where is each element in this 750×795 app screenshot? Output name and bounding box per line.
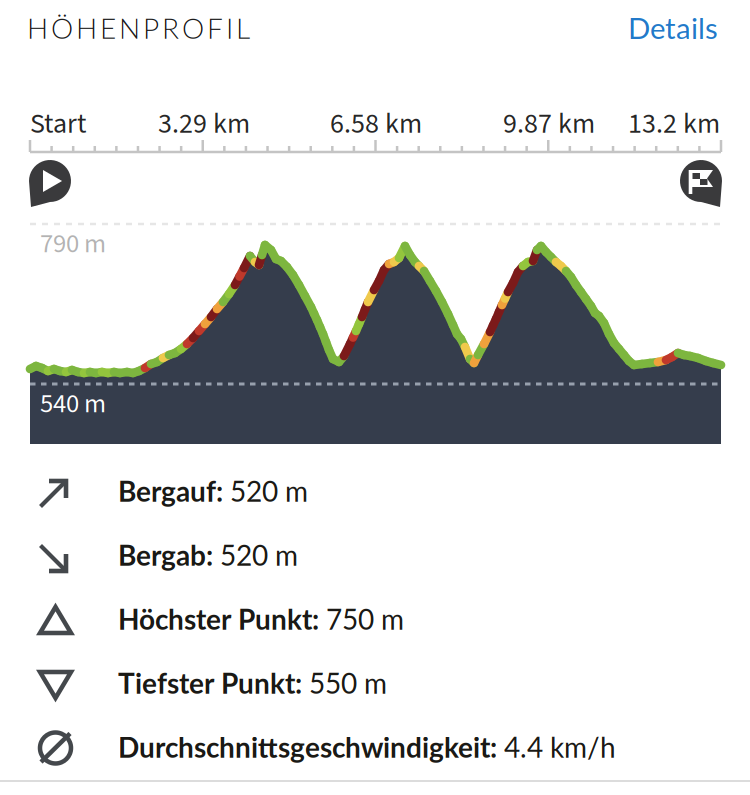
button[interactable]: Durchschnittsgeschwindigkeit: 4.4 km/h [0,715,750,779]
staticText: Tiefster Punkt: 550 m [118,667,387,699]
staticText: 6.58 km [330,104,422,144]
button[interactable]: Bergab: 520 m [0,523,750,587]
button[interactable]: Höchster Punkt: 750 m [0,587,750,651]
staticText: 3.29 km [158,104,250,144]
button[interactable]: Tiefster Punkt: 550 m [0,651,750,715]
button[interactable]: HÖHENPROFIL [27,11,250,45]
staticText: Details [628,10,718,45]
staticText: 13.2 km [628,104,720,144]
staticText: HÖHENPROFIL [27,11,250,45]
staticText: 9.87 km [503,104,595,144]
staticText: Durchschnittsgeschwindigkeit: 4.4 km/h [118,731,616,763]
staticText: Höchster Punkt: 750 m [118,603,404,635]
staticText: 540 m [40,385,106,423]
staticText: Bergauf: 520 m [118,475,308,507]
button[interactable]: Bergauf: 520 m [0,459,750,523]
staticText: Start [30,104,86,144]
button[interactable]: Details [618,10,718,45]
staticText: 790 m [40,225,106,263]
staticText: Bergab: 520 m [118,539,298,571]
